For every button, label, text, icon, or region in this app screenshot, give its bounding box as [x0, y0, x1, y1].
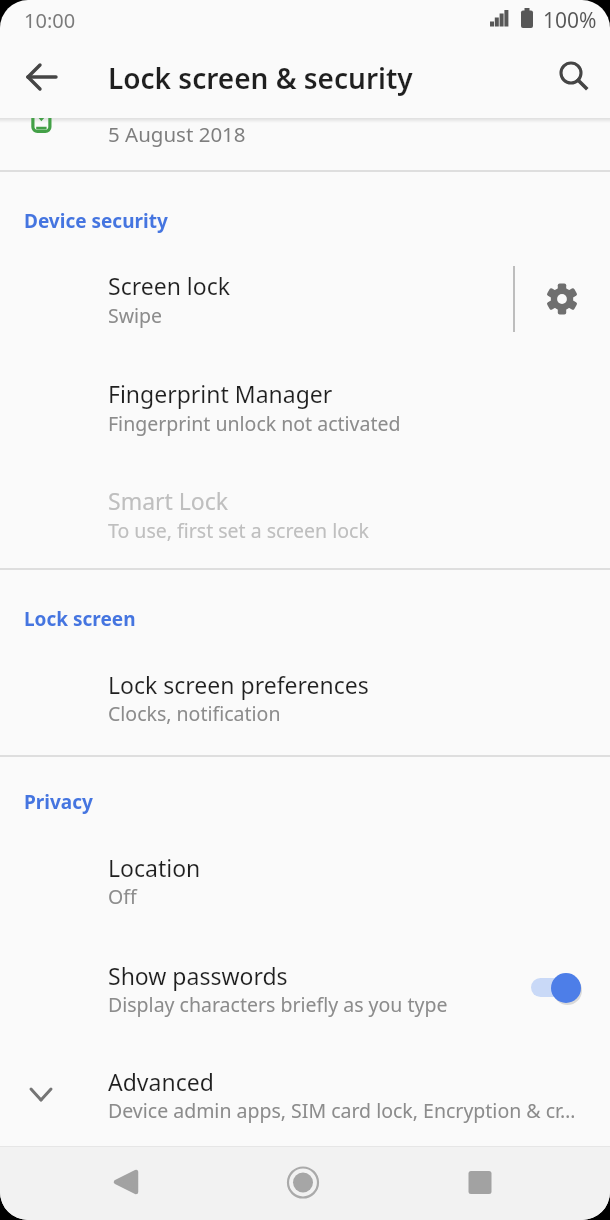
button[interactable]	[0, 826, 610, 933]
staticText: Screen lock	[108, 270, 231, 301]
staticText: Off	[108, 883, 137, 910]
staticText: 5 August 2018	[108, 120, 246, 148]
button[interactable]	[18, 53, 66, 101]
staticText: 100%	[543, 6, 597, 35]
button[interactable]	[456, 1158, 504, 1206]
staticText: Lock screen preferences	[108, 669, 369, 700]
button[interactable]	[0, 244, 500, 351]
button[interactable]	[538, 275, 586, 323]
button[interactable]	[0, 643, 610, 750]
button[interactable]	[0, 118, 610, 170]
staticText: Device admin apps, SIM card lock, Encryp…	[108, 1097, 576, 1124]
button[interactable]	[279, 1158, 327, 1206]
staticText: Fingerprint unlock not activated	[108, 410, 401, 437]
staticText: Fingerprint Manager	[108, 378, 333, 409]
staticText: Show passwords	[108, 960, 288, 991]
staticText: Clocks, notification	[108, 700, 281, 727]
staticText: Swipe	[108, 302, 163, 329]
staticText: Advanced	[108, 1066, 214, 1097]
staticText: Privacy	[24, 789, 93, 815]
button[interactable]	[550, 53, 598, 101]
button[interactable]	[101, 1158, 149, 1206]
button[interactable]	[0, 934, 610, 1041]
staticText: Lock screen & security	[108, 59, 413, 97]
button[interactable]	[0, 352, 610, 459]
staticText: To use, first set a screen lock	[108, 517, 369, 544]
staticText: Lock screen	[24, 606, 136, 632]
staticText: 10:00	[24, 7, 76, 34]
staticText: Device security	[24, 208, 168, 234]
button[interactable]	[0, 1040, 610, 1146]
staticText: Smart Lock	[108, 485, 229, 516]
staticText: Display characters briefly as you type	[108, 991, 448, 1018]
staticText: Location	[108, 852, 201, 883]
